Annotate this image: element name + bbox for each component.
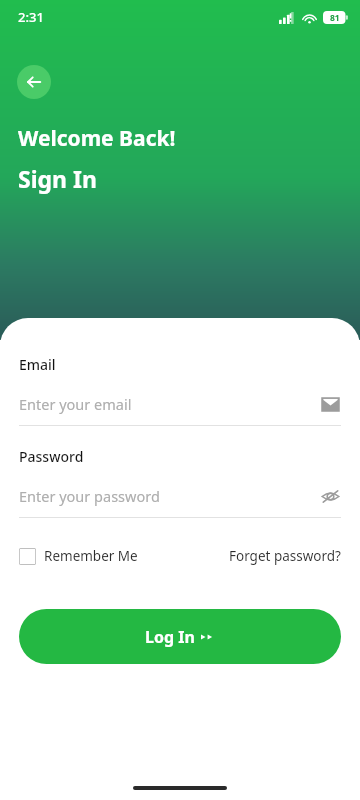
staticText: Forget password?: [229, 547, 341, 565]
button[interactable]: Enter your password: [19, 484, 341, 508]
button[interactable]: Back: [17, 65, 51, 99]
button[interactable]: Log In: [19, 609, 341, 664]
button[interactable]: Enter your email: [19, 392, 341, 416]
staticText: Welcome Back!: [18, 124, 176, 153]
staticText: Sign In: [18, 163, 97, 194]
staticText: Remember Me: [44, 547, 138, 565]
staticText: 2:31: [18, 8, 44, 26]
staticText: 81: [330, 12, 340, 24]
staticText: Enter your password: [19, 486, 319, 506]
staticText: Email: [19, 355, 56, 374]
staticText: Password: [19, 447, 84, 466]
button[interactable]: Show password: [319, 485, 341, 507]
other: Email: [319, 393, 341, 415]
staticText: Enter your email: [19, 394, 319, 414]
button[interactable]: Remember Me: [19, 547, 138, 565]
button[interactable]: Forget password?: [229, 547, 341, 565]
staticText: Log In: [145, 626, 195, 648]
